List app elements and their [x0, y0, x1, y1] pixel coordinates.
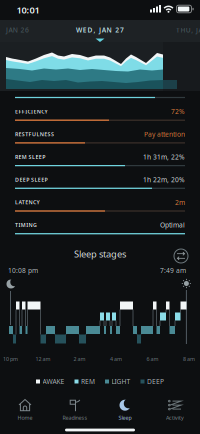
staticText: Home — [17, 414, 32, 421]
staticText: TIMING — [15, 221, 37, 229]
staticText: 12 am — [35, 355, 50, 363]
staticText: 4 am — [110, 355, 122, 363]
staticText: LIGHT — [111, 377, 130, 386]
staticText: 10:08 pm — [8, 266, 38, 275]
staticText: Sleep — [118, 414, 131, 421]
button[interactable]: Switch chart view — [172, 247, 190, 265]
staticText: Readiness — [62, 414, 87, 421]
staticText: EFFICIENCY — [15, 108, 48, 115]
staticText: 7:49 am — [160, 266, 186, 275]
staticText: 10:01 — [16, 4, 39, 16]
staticText: THU, JAN — [176, 26, 200, 34]
button[interactable]: THU, JAN — [176, 19, 200, 41]
staticText: JAN 26 — [6, 26, 29, 34]
staticText: Pay attention — [144, 130, 185, 139]
staticText: REM SLEEP — [15, 153, 45, 160]
staticText: 2m — [175, 198, 185, 207]
staticText: 1h 31m, 22% — [143, 152, 185, 161]
staticText: DEEP SLEEP — [15, 176, 48, 183]
staticText: LATENCY — [15, 199, 39, 206]
button[interactable]: Sleep — [102, 396, 148, 424]
button[interactable]: WED, JAN 27 — [55, 19, 145, 41]
staticText: 6 am — [146, 355, 158, 363]
staticText: RESTFULNESS — [15, 131, 54, 138]
staticText: Activity — [166, 414, 184, 421]
button[interactable]: Activity — [152, 396, 198, 424]
staticText: AWAKE — [42, 377, 64, 386]
staticText: REM — [81, 377, 95, 386]
staticText: 1h 22m, 20% — [143, 175, 185, 184]
staticText: DEEP — [147, 377, 164, 386]
staticText: 72% — [171, 107, 185, 116]
button[interactable]: Readiness — [52, 396, 98, 424]
staticText: WED, JAN 27 — [76, 26, 124, 34]
staticText: 2 am — [73, 355, 85, 363]
staticText: Sleep stages — [74, 248, 126, 260]
staticText: 8 am — [183, 355, 195, 363]
button[interactable]: JAN 26 — [6, 19, 46, 41]
staticText: Optimal — [160, 221, 185, 229]
button[interactable]: Home — [2, 396, 48, 424]
staticText: 10 pm — [3, 355, 18, 363]
